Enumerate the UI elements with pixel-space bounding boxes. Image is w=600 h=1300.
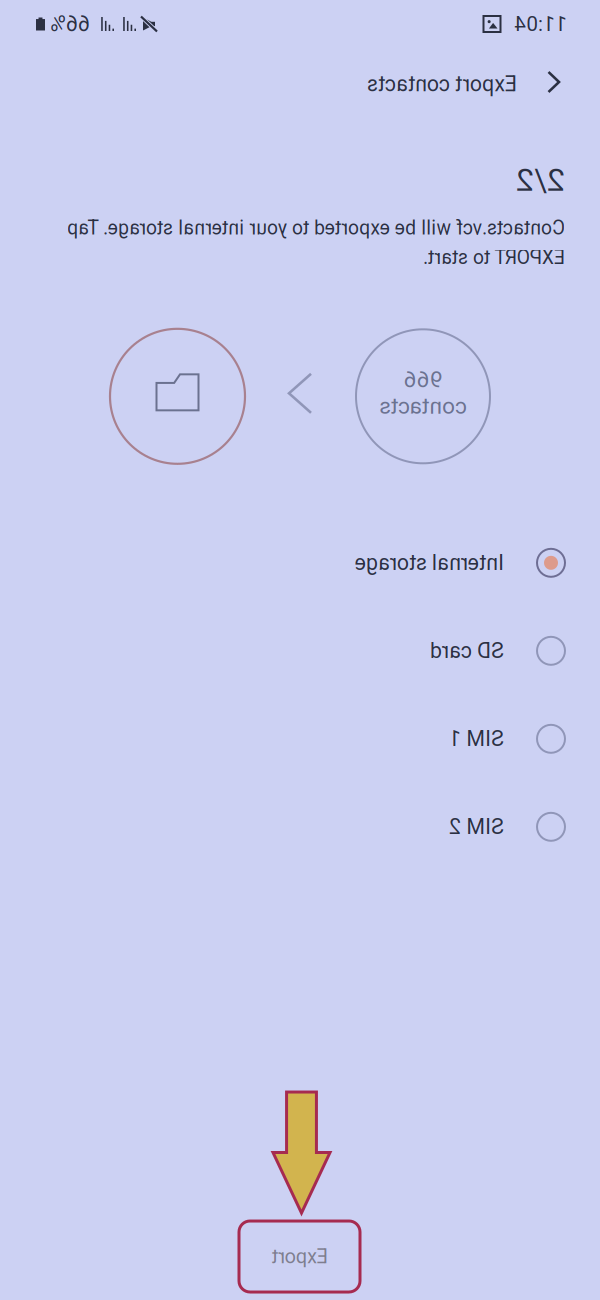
staticText: 11:04 (33, 12, 86, 36)
button[interactable]: SIM 2 (0, 783, 600, 871)
button[interactable]: Export (240, 1221, 361, 1292)
staticText: 66% (510, 11, 550, 36)
staticText: contacts (133, 393, 221, 419)
button[interactable]: SD card (0, 607, 600, 695)
staticText: 966 (157, 366, 196, 393)
staticText: Contacts.vcf will be exported to your in… (35, 216, 533, 269)
button[interactable]: Internal storage (0, 519, 600, 607)
button[interactable]: SIM 1 (0, 695, 600, 783)
staticText: Export (272, 1245, 329, 1268)
